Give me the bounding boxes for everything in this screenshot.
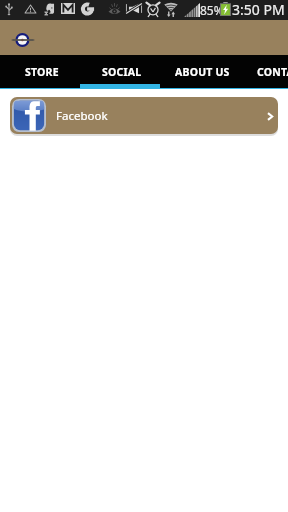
staticText: SOCIAL: [102, 65, 142, 79]
staticText: 3:50 PM: [232, 0, 285, 19]
other: Logo: [11, 32, 35, 48]
staticText: CONTACT: [257, 65, 288, 79]
staticText: 85%: [200, 2, 224, 18]
button[interactable]: STORE: [0, 55, 80, 89]
button[interactable]: CONTACT: [240, 55, 288, 89]
button[interactable]: ABOUT US: [160, 55, 240, 89]
staticText: Facebook: [56, 108, 108, 124]
staticText: STORE: [25, 65, 59, 79]
button[interactable]: Facebook: [10, 97, 278, 134]
button[interactable]: SOCIAL: [80, 55, 160, 89]
staticText: ABOUT US: [175, 65, 230, 79]
